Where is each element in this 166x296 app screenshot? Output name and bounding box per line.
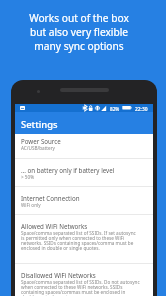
staticText: Settings [21,118,58,131]
staticText: Works out of the box but also very flexi… [0,11,158,53]
button[interactable]: Power Source [15,134,153,158]
staticText: AC/USB/battery [21,145,140,151]
staticText: Internet Connection [21,194,80,202]
staticText: ... on battery only if battery level [21,166,115,174]
staticText: Space/comma separated list of SSIDs. If … [21,230,140,251]
button[interactable]: Allowed WiFi Networks [15,215,153,263]
staticText: 22:30 [135,106,148,113]
button[interactable]: ... on battery only if battery level [15,159,153,186]
button[interactable]: Internet Connection [15,187,153,214]
staticText: > 50% [21,174,140,180]
staticText: Allowed WiFi Networks [21,222,88,230]
staticText: Space/comma separated list of SSIDs. Do … [21,279,140,296]
button[interactable]: Disallowed WiFi Networks [15,264,153,296]
other: Notification [20,106,25,110]
staticText: 82% [110,106,120,112]
staticText: Power Source [21,137,61,145]
staticText: Disallowed WiFi Networks [21,271,96,279]
staticText: WiFi only [21,202,140,208]
button[interactable]: Settings [15,112,153,134]
